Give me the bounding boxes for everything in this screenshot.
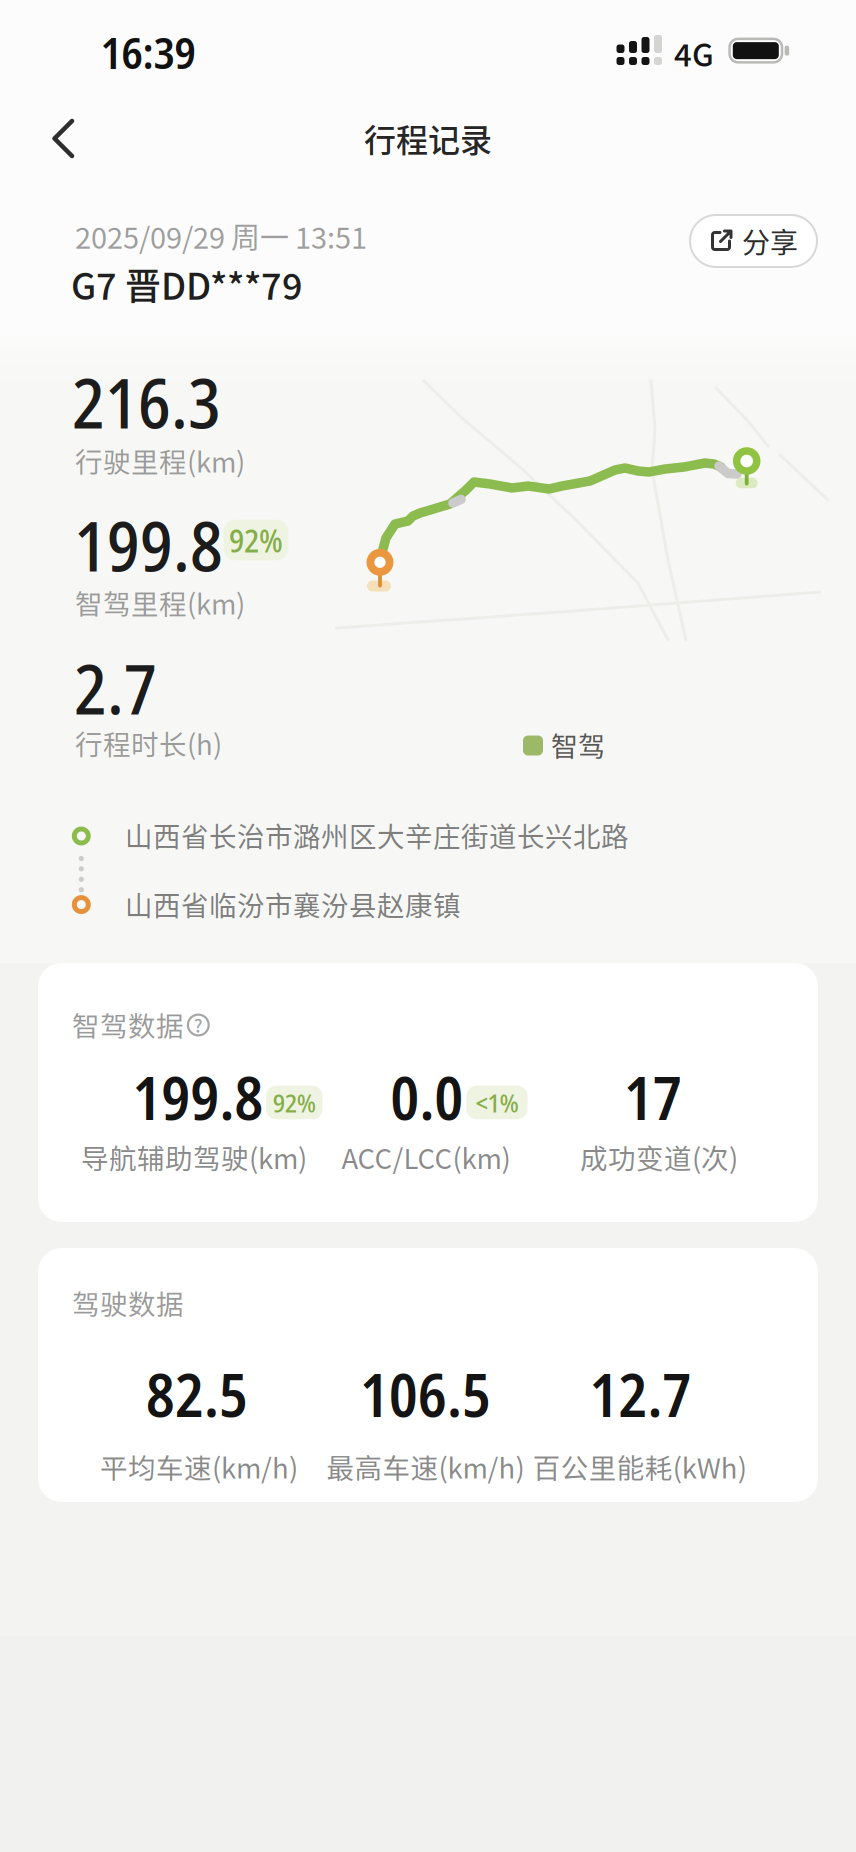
staticText: ACC/LCC(km) (341, 1137, 510, 1177)
staticText: 行程时长(h) (75, 723, 222, 763)
staticText: 4G (674, 31, 714, 75)
staticText: 82.5 (146, 1354, 248, 1434)
staticText: 2025/09/29 周一 13:51 (75, 215, 367, 257)
staticText: 最高车速(km/h) (326, 1447, 524, 1486)
button[interactable]: 帮助 (187, 1013, 210, 1036)
staticText: 百公里能耗(kWh) (533, 1447, 747, 1486)
staticText: 智驾 (551, 725, 605, 765)
staticText: 199.8 (132, 1057, 263, 1137)
staticText: 106.5 (360, 1354, 491, 1434)
button[interactable]: 分享 (689, 214, 818, 268)
staticText: 成功变道(次) (580, 1137, 738, 1177)
staticText: 92% (229, 518, 283, 562)
staticText: 智驾里程(km) (75, 583, 245, 622)
staticText: <1% (475, 1085, 518, 1120)
staticText: 92% (273, 1085, 316, 1120)
staticText: 山西省临汾市襄汾县赵康镇 (125, 884, 461, 924)
staticText: 分享 (742, 221, 798, 261)
staticText: 199.8 (74, 498, 223, 592)
staticText: ? (194, 1012, 203, 1038)
staticText: 山西省长治市潞州区大辛庄街道长兴北路 (125, 815, 629, 855)
staticText: 智驾数据 (72, 1005, 184, 1044)
staticText: 216.3 (72, 355, 221, 449)
staticText: 行程记录 (364, 115, 492, 161)
staticText: 0.0 (390, 1057, 463, 1137)
staticText: 2.7 (74, 641, 157, 735)
staticText: 驾驶数据 (72, 1283, 184, 1323)
staticText: 12.7 (590, 1354, 692, 1434)
staticText: 行驶里程(km) (75, 441, 245, 480)
staticText: 17 (624, 1057, 682, 1137)
button[interactable]: Back (33, 108, 93, 168)
staticText: 导航辅助驾驶(km) (81, 1137, 307, 1177)
staticText: 平均车速(km/h) (100, 1447, 298, 1486)
staticText: G7 晋DD***79 (71, 258, 303, 310)
staticText: 16:39 (100, 22, 195, 82)
